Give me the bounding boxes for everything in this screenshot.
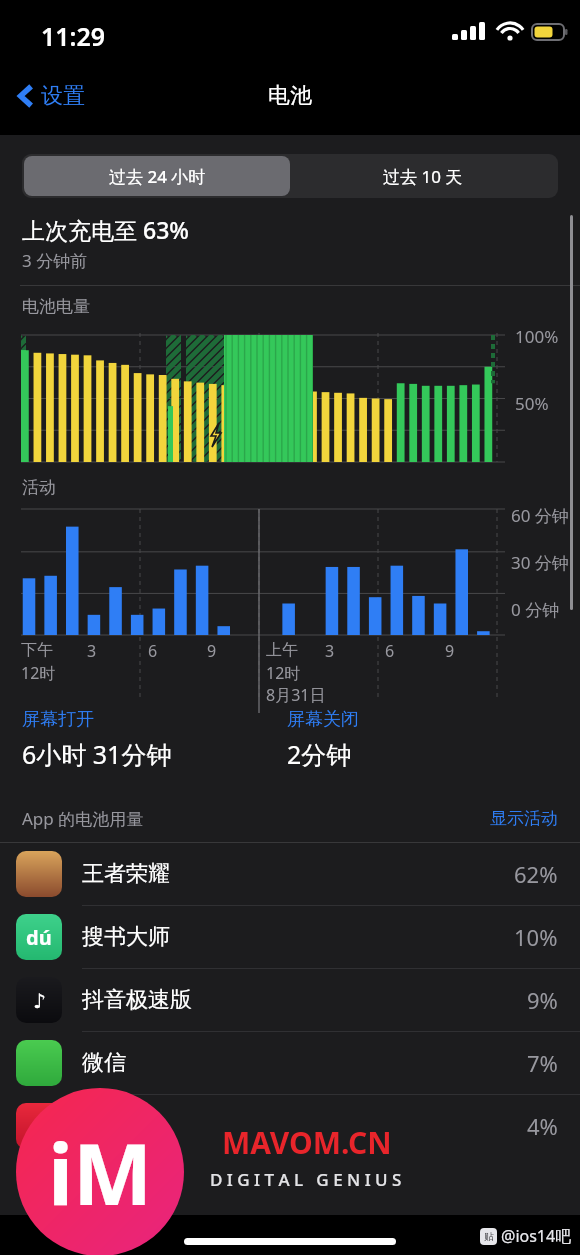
button[interactable]: 微信 [0,1032,580,1094]
staticText: 3 分钟前 [22,249,88,272]
staticText: 2分钟 [287,737,352,771]
staticText: 100% [515,325,559,348]
staticText: 30 分钟 [511,551,569,574]
staticText: 下午 [21,640,53,660]
staticText: 过去 24 小时 [109,165,206,188]
staticText: 屏幕打开 [22,708,94,731]
staticText: @ios14吧 [501,1225,572,1247]
staticText: 微信 [82,1049,527,1077]
button[interactable]: 显示活动 [490,808,558,829]
staticText: 上次充电至 63% [22,214,189,245]
staticText: 7% [527,1048,558,1078]
staticText: 9% [527,985,558,1015]
button[interactable]: 王者荣耀 [0,843,580,905]
staticText: ♪ [33,989,46,1012]
staticText: 王者荣耀 [82,860,514,888]
staticText: D I G I T A L G E N I U S [210,1168,402,1191]
staticText: dú [26,924,52,951]
staticText: 6 [148,640,158,662]
staticText: 6 [385,640,395,662]
staticText: 3 [325,640,335,662]
staticText: 10% [514,922,558,952]
staticText: 电池 [268,82,312,110]
staticText: 活动 [22,477,56,498]
staticText: 显示活动 [490,808,558,829]
button[interactable]: 设置 [12,76,91,116]
staticText: 9 [445,640,455,662]
staticText: MAVOM.CN [222,1122,392,1163]
staticText: 抖音极速版 [82,986,527,1014]
staticText: 62% [514,859,558,889]
staticText: 电池电量 [22,296,90,317]
staticText: 9 [207,640,217,662]
button[interactable]: 过去 10 天 [290,156,556,196]
staticText: 过去 10 天 [383,165,463,188]
staticText: 上午 [266,640,298,660]
staticText: 60 分钟 [511,504,569,527]
staticText: 0 分钟 [511,598,560,621]
staticText: 3 [87,640,97,662]
button[interactable]: ♪ [0,969,580,1031]
staticText: 12时 [266,662,301,684]
staticText: 12时 [21,662,56,684]
staticText: 屏幕关闭 [287,708,359,731]
staticText: 8月31日 [266,684,326,706]
staticText: App 的电池用量 [22,807,144,830]
staticText: 搜书大师 [82,923,514,951]
button[interactable]: 小红书 [0,1095,580,1157]
button[interactable]: 过去 24 小时 [24,156,290,196]
button[interactable]: dú [0,906,580,968]
staticText: 贴 [484,1230,494,1243]
staticText: iM [48,1115,153,1229]
staticText: 设置 [41,82,85,110]
staticText: 6小时 31分钟 [22,737,172,771]
staticText: 小红书 [82,1112,527,1140]
staticText: 11:29 [41,19,106,53]
staticText: 50% [515,392,549,415]
staticText: 4% [527,1111,558,1141]
